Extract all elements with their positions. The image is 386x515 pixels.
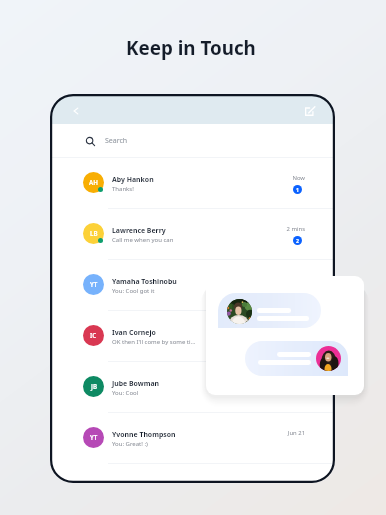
staticText: IC — [90, 331, 97, 339]
staticText: OK then I'll come by some ti... — [112, 338, 244, 346]
staticText: 2 mins — [248, 225, 305, 233]
staticText: Now — [248, 174, 305, 182]
staticText: Thanks! — [112, 185, 244, 193]
staticText: Jube Bowman — [112, 379, 159, 388]
button[interactable]: New message — [301, 102, 319, 120]
staticText: Call me when you can — [112, 236, 244, 244]
staticText: 1 — [296, 186, 299, 193]
staticText: Lawrence Berry — [112, 226, 166, 235]
staticText: You: Cool got it — [112, 287, 244, 295]
staticText: AH — [89, 178, 98, 186]
staticText: Search — [105, 136, 128, 146]
staticText: You: Great! :) — [112, 440, 244, 448]
staticText: JB — [91, 382, 97, 390]
button[interactable]: Back — [67, 102, 85, 120]
staticText: 2 — [296, 237, 299, 244]
staticText: YT — [90, 433, 98, 441]
staticText: Aby Hankon — [112, 175, 154, 184]
staticText: Yamaha Toshinobu — [112, 277, 177, 286]
staticText: You: Cool — [112, 389, 244, 397]
button[interactable]: AH — [50, 158, 335, 209]
button[interactable]: YT — [50, 413, 335, 464]
staticText: Jun 21 — [248, 429, 305, 437]
staticText: LB — [90, 229, 98, 237]
button[interactable]: IC — [50, 311, 335, 362]
staticText: Ivan Cornejo — [112, 328, 156, 337]
staticText: Yvonne Thompson — [112, 430, 176, 439]
button[interactable]: Search — [50, 124, 335, 157]
button[interactable]: LB — [50, 209, 335, 260]
button[interactable]: JB — [50, 362, 335, 413]
staticText: Keep in Touch — [126, 35, 256, 61]
button[interactable]: YT — [50, 260, 335, 311]
staticText: YT — [90, 280, 98, 288]
